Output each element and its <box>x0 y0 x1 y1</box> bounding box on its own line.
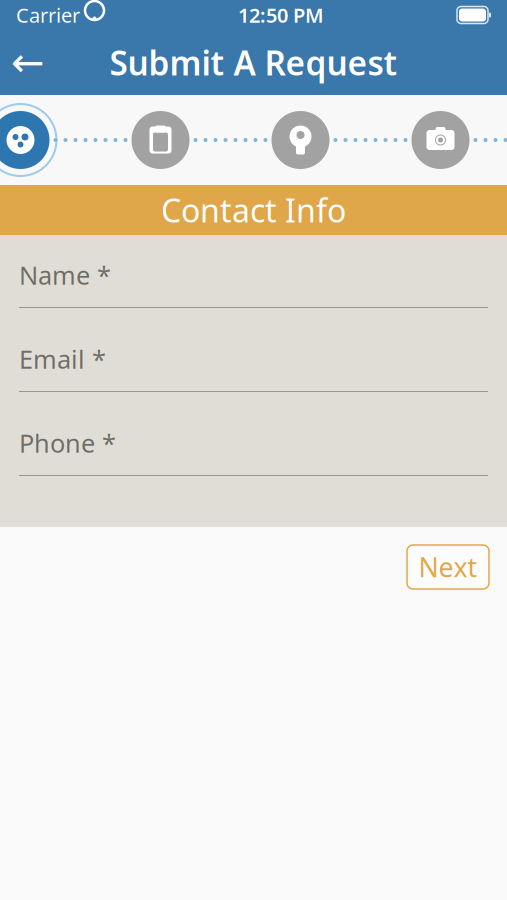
button[interactable]: Step <box>123 103 197 177</box>
staticText: Phone * <box>19 426 116 460</box>
staticText: Email * <box>19 342 106 376</box>
button[interactable]: Step <box>0 103 57 177</box>
staticText <box>79 0 85 30</box>
staticText: ← <box>11 40 45 85</box>
button[interactable]: Back <box>0 34 56 90</box>
staticText: Submit A Request <box>109 40 397 85</box>
staticText: 12:50 PM <box>238 2 324 28</box>
staticText: Next <box>418 549 477 585</box>
button[interactable]: Next <box>407 545 489 589</box>
button[interactable]: Step <box>263 103 337 177</box>
staticText: Carrier <box>16 2 80 28</box>
staticText: Name * <box>19 258 111 292</box>
staticText: Contact Info <box>161 189 346 231</box>
button[interactable]: Step <box>403 103 477 177</box>
